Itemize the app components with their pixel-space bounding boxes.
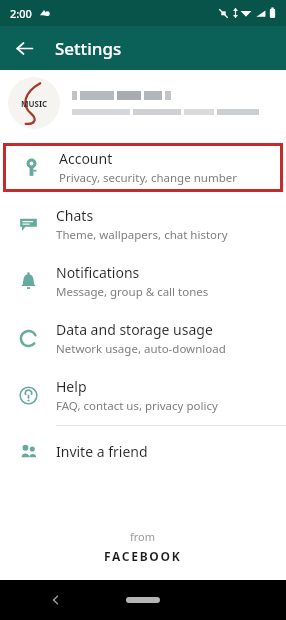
staticText: Network usage, auto-download [56, 341, 226, 357]
staticText: from [130, 529, 156, 544]
staticText: Chats [56, 206, 94, 225]
button[interactable]: Back [0, 26, 48, 70]
staticText: Account [59, 149, 113, 168]
staticText: Invite a friend [56, 442, 148, 461]
button[interactable]: Home [126, 597, 160, 603]
button[interactable]: Notifications [0, 257, 286, 306]
staticText: FAQ, contact us, privacy policy [56, 398, 218, 414]
staticText: Help [56, 377, 87, 396]
staticText: Data and storage usage [56, 320, 213, 339]
staticText: Message, group & call tones [56, 284, 209, 300]
button[interactable]: Chats [0, 200, 286, 249]
staticText: FACEBOOK [104, 548, 182, 564]
staticText: Settings [55, 37, 122, 60]
staticText: 2:00 [10, 6, 32, 21]
button[interactable]: MUSIC STUDIO [0, 70, 286, 136]
button[interactable]: Data and storage usage [0, 314, 286, 363]
button[interactable]: Invite a friend [0, 426, 286, 476]
button[interactable]: Help [0, 371, 286, 420]
staticText: MUSIC STUDIO [8, 98, 60, 109]
staticText: Notifications [56, 263, 140, 282]
staticText: Theme, wallpapers, chat history [56, 227, 228, 243]
button[interactable]: Back [44, 588, 68, 612]
staticText: Privacy, security, change number [59, 170, 237, 186]
button[interactable]: Account [3, 143, 283, 192]
